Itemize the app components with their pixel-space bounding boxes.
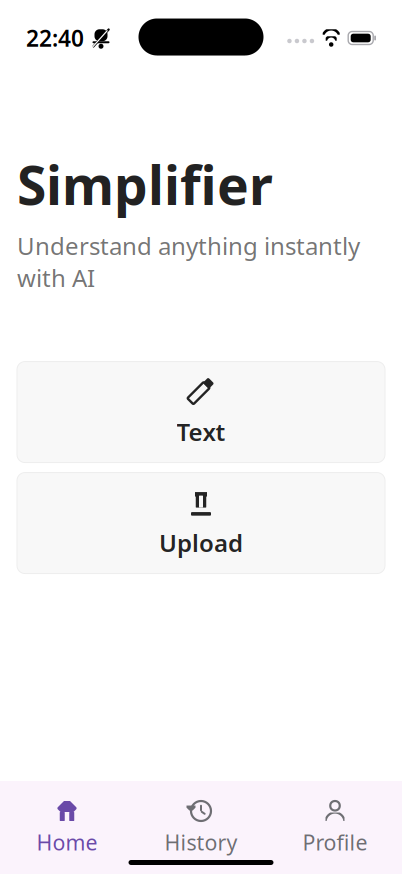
button[interactable]: Profile (268, 797, 402, 858)
button[interactable]: Upload (17, 473, 385, 574)
staticText: Text (176, 416, 225, 447)
staticText: 22:40 (26, 23, 84, 53)
staticText: Profile (302, 828, 367, 856)
staticText: Home (36, 828, 97, 856)
staticText: Upload (159, 527, 243, 558)
staticText: History (164, 828, 237, 856)
staticText: Simplifier (17, 149, 273, 220)
button[interactable]: Home (0, 797, 134, 858)
staticText: Understand anything instantly with AI (17, 230, 360, 293)
button[interactable]: History (134, 797, 268, 858)
button[interactable]: Text (17, 362, 385, 463)
